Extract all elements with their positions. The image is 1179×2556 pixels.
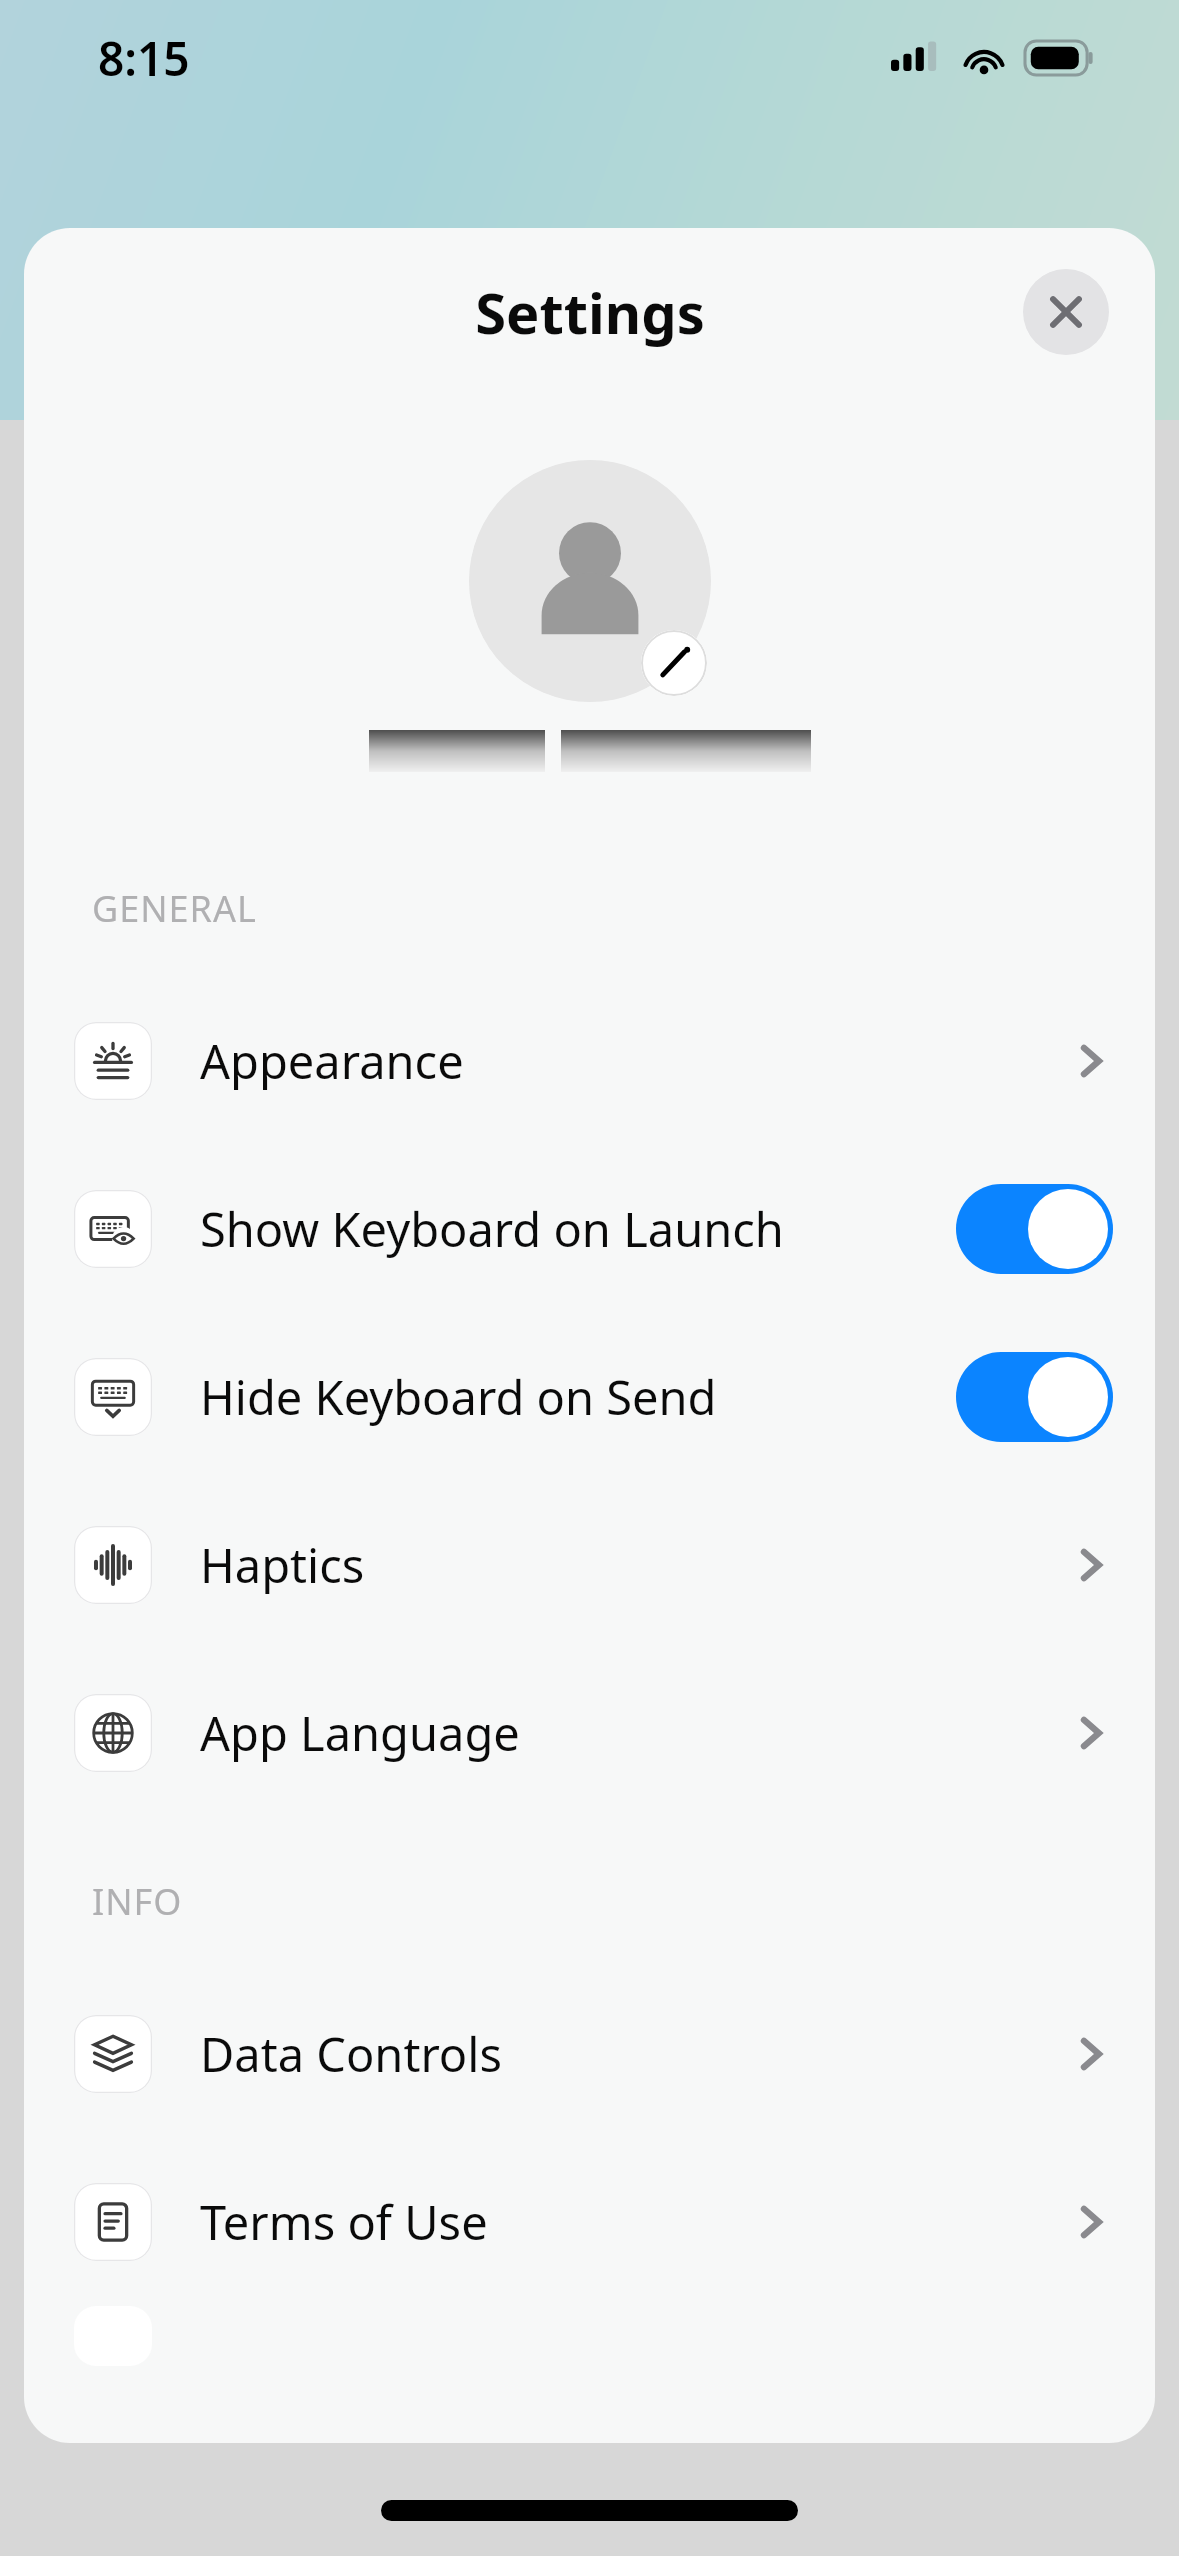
button[interactable]: Appearance [24, 977, 1155, 1145]
staticText: INFO [92, 1877, 183, 1926]
button[interactable]: Close [1023, 269, 1109, 355]
staticText: GENERAL [92, 884, 257, 933]
button[interactable]: Edit profile photo [641, 630, 707, 696]
staticText: 8:15 [98, 27, 190, 90]
button[interactable]: Show Keyboard on Launch toggle [956, 1184, 1113, 1274]
staticText: Haptics [200, 1533, 1069, 1597]
button[interactable]: App Language [24, 1649, 1155, 1817]
staticText: Show Keyboard on Launch [200, 1197, 956, 1261]
button[interactable]: Hide Keyboard on Send toggle [956, 1352, 1113, 1442]
staticText: Terms of Use [200, 2190, 1069, 2254]
button[interactable]: Data Controls [24, 1970, 1155, 2138]
button[interactable]: Profile photo [469, 460, 711, 702]
staticText: App Language [200, 1701, 1069, 1765]
button[interactable]: Hide Keyboard on Send [24, 1313, 1155, 1481]
button[interactable]: Terms of Use [24, 2138, 1155, 2306]
staticText: Settings [475, 274, 705, 350]
staticText: Appearance [200, 1029, 1069, 1093]
staticText: Hide Keyboard on Send [200, 1365, 956, 1429]
staticText: Data Controls [200, 2022, 1069, 2086]
button[interactable]: Haptics [24, 1481, 1155, 1649]
button[interactable]: Show Keyboard on Launch [24, 1145, 1155, 1313]
